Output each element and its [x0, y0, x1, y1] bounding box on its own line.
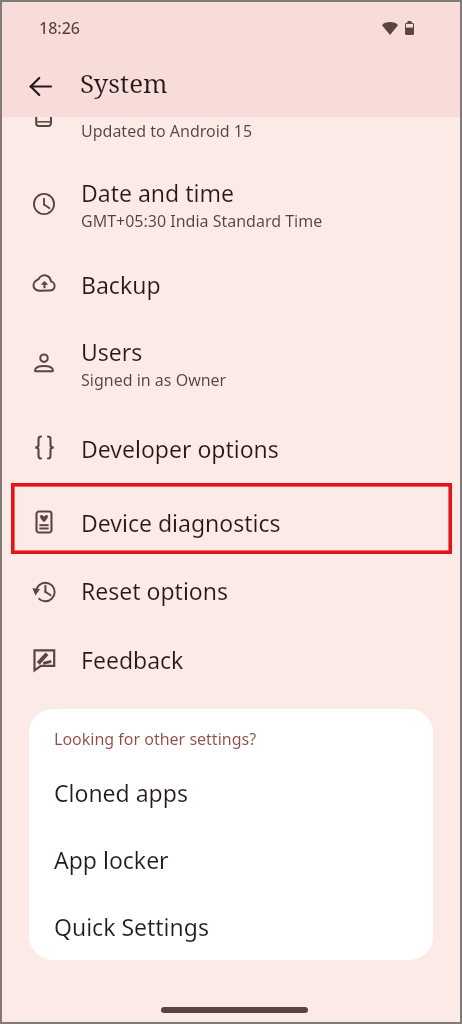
button[interactable]: App locker [29, 827, 433, 894]
button[interactable] [2, 559, 460, 624]
button[interactable]: Cloned apps [29, 760, 433, 827]
button[interactable] [2, 490, 460, 557]
staticText: Date and time [81, 177, 234, 208]
staticText: Backup [81, 269, 161, 300]
staticText: 18:26 [39, 17, 80, 39]
button[interactable] [2, 156, 460, 238]
staticText: Looking for other settings? [54, 728, 257, 750]
button[interactable]: Navigate back [16, 62, 64, 110]
staticText: Device diagnostics [81, 507, 281, 538]
button[interactable] [2, 240, 460, 302]
button[interactable]: Quick Settings [29, 894, 433, 960]
staticText: System [80, 65, 168, 100]
staticText: Quick Settings [54, 911, 209, 942]
staticText: Reset options [81, 575, 228, 606]
staticText: Feedback [81, 644, 184, 675]
staticText: Users [81, 336, 143, 367]
button[interactable] [2, 417, 460, 482]
staticText: Developer options [81, 433, 279, 464]
staticText: Cloned apps [54, 777, 188, 808]
staticText: Signed in as Owner [81, 369, 227, 391]
staticText: Updated to Android 15 [81, 120, 253, 142]
staticText: GMT+05:30 India Standard Time [81, 210, 323, 232]
button[interactable] [2, 115, 460, 143]
button[interactable] [2, 316, 460, 398]
staticText: App locker [54, 844, 169, 875]
button[interactable] [2, 627, 460, 692]
